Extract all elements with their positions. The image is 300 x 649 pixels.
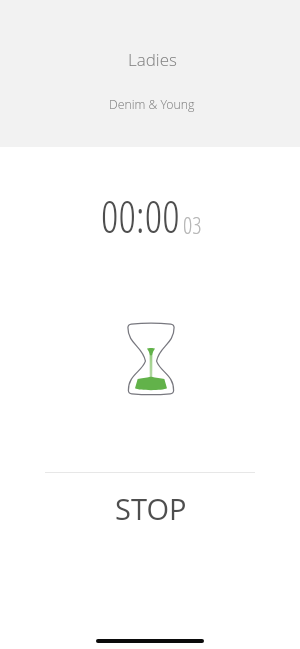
button[interactable] — [0, 0, 300, 147]
button[interactable]: STOP — [1, 472, 300, 544]
staticText: 03 — [183, 209, 202, 240]
other: Timer running — [127, 323, 175, 394]
staticText: STOP — [115, 489, 187, 528]
staticText: Ladies — [128, 48, 177, 71]
staticText: Denim & Young — [109, 96, 195, 113]
staticText: 00:00 — [101, 187, 180, 246]
